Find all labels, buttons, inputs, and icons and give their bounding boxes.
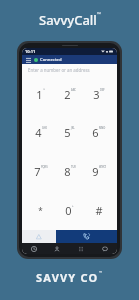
staticText: Connected bbox=[40, 57, 62, 63]
button[interactable]: Keypad bbox=[69, 243, 93, 254]
button[interactable]: 1 bbox=[26, 75, 55, 113]
button[interactable]: Call bbox=[56, 230, 117, 243]
button[interactable]: 5 bbox=[55, 113, 84, 152]
staticText: SavvyCall bbox=[39, 11, 97, 29]
staticText: WXYZ bbox=[99, 165, 106, 169]
staticText: 3 bbox=[93, 87, 100, 102]
staticText: MNO bbox=[99, 126, 106, 130]
button[interactable]: * bbox=[26, 191, 55, 230]
staticText: 1 bbox=[36, 87, 43, 102]
button[interactable]: Enter a number or an address bbox=[22, 64, 117, 75]
button[interactable]: # bbox=[84, 191, 113, 230]
staticText: 6 bbox=[92, 125, 99, 140]
staticText: * bbox=[38, 205, 43, 216]
staticText: GHI bbox=[42, 126, 47, 130]
button[interactable]: 4 bbox=[26, 113, 55, 152]
button[interactable]: 0 bbox=[55, 191, 84, 230]
button[interactable]: Recents bbox=[22, 243, 45, 254]
staticText: 4 bbox=[35, 125, 42, 140]
button[interactable]: 9 bbox=[84, 152, 113, 191]
staticText: ™ bbox=[97, 11, 101, 18]
staticText: + bbox=[72, 204, 74, 208]
button[interactable]: 7 bbox=[26, 152, 55, 191]
staticText: # bbox=[95, 203, 103, 218]
button[interactable]: 6 bbox=[84, 113, 113, 152]
staticText: 5 bbox=[64, 125, 71, 140]
button[interactable]: Video call bbox=[22, 230, 56, 243]
staticText: 8 bbox=[64, 164, 71, 179]
staticText: ABC bbox=[71, 88, 76, 92]
staticText: JKL bbox=[71, 126, 75, 130]
staticText: 7 bbox=[34, 164, 41, 179]
button[interactable]: 8 bbox=[55, 152, 84, 191]
staticText: 10:11 bbox=[25, 49, 36, 54]
button[interactable]: Contacts bbox=[45, 243, 69, 254]
staticText: 9 bbox=[92, 164, 99, 179]
button[interactable]: Menu bbox=[25, 56, 32, 63]
staticText: 2 bbox=[64, 87, 71, 102]
staticText: ™ bbox=[99, 270, 103, 275]
staticText: TUV bbox=[71, 165, 76, 169]
staticText: Enter a number or an address bbox=[28, 67, 90, 73]
staticText: ∞ bbox=[43, 88, 46, 91]
button[interactable]: 2 bbox=[55, 75, 84, 113]
staticText: PQRS bbox=[41, 165, 48, 169]
staticText: 0 bbox=[65, 203, 72, 218]
staticText: SAVVY CO bbox=[36, 270, 99, 285]
button[interactable]: Messages bbox=[93, 243, 117, 254]
button[interactable]: 3 bbox=[84, 75, 113, 113]
staticText: DEF bbox=[100, 88, 105, 92]
